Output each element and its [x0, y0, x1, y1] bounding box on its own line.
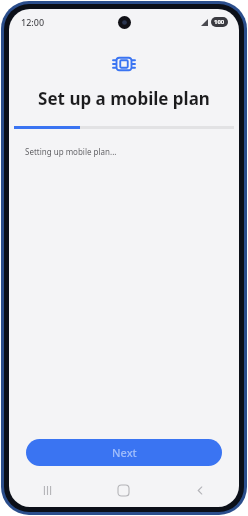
staticText: Set up a mobile plan: [19, 87, 229, 110]
staticText: 100: [214, 18, 225, 26]
button[interactable]: Next: [26, 439, 222, 466]
button[interactable]: Home: [85, 479, 162, 501]
staticText: Next: [112, 445, 137, 460]
button[interactable]: Recents: [9, 479, 85, 501]
other: eSIM chip: [113, 53, 135, 75]
staticText: Setting up mobile plan...: [25, 146, 117, 157]
button[interactable]: Back: [162, 479, 239, 501]
staticText: 12:00: [21, 16, 45, 28]
